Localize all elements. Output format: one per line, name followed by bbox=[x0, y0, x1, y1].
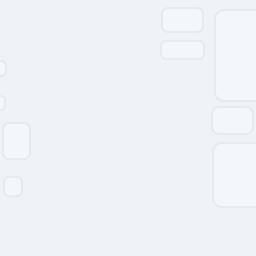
button[interactable]: Item bbox=[162, 8, 203, 32]
button[interactable]: Item bbox=[161, 41, 204, 59]
button[interactable]: Card bbox=[213, 143, 256, 207]
button[interactable]: Tag bbox=[212, 107, 253, 134]
button[interactable]: Thumbnail bbox=[3, 123, 30, 159]
button[interactable]: Icon bbox=[4, 177, 22, 196]
